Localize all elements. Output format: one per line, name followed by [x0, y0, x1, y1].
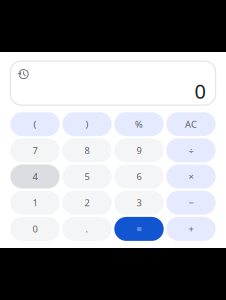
button[interactable]: 6 — [114, 164, 164, 188]
staticText: ÷ — [188, 144, 193, 156]
staticText: % — [135, 118, 143, 130]
staticText: + — [188, 223, 193, 235]
button[interactable]: − — [166, 191, 216, 215]
staticText: − — [188, 196, 193, 209]
staticText: 3 — [136, 196, 141, 209]
button[interactable]: 7 — [10, 138, 60, 162]
button[interactable]: 2 — [62, 191, 112, 215]
staticText: 4 — [32, 170, 37, 183]
button[interactable]: % — [114, 112, 164, 136]
staticText: × — [188, 170, 193, 183]
button[interactable]: History — [16, 66, 29, 82]
button[interactable]: 9 — [114, 138, 164, 162]
button[interactable]: 1 — [10, 191, 60, 215]
staticText: 1 — [32, 196, 37, 209]
staticText: 7 — [32, 144, 37, 156]
staticText: 9 — [136, 144, 141, 156]
staticText: AC — [185, 118, 197, 130]
button[interactable]: × — [166, 164, 216, 188]
staticText: = — [136, 223, 141, 235]
button[interactable]: ( — [10, 112, 60, 136]
button[interactable]: ÷ — [166, 138, 216, 162]
staticText: ( — [33, 118, 36, 130]
staticText: 0 — [194, 78, 205, 104]
button[interactable]: 4 — [10, 164, 60, 188]
staticText: . — [85, 223, 88, 235]
staticText: ) — [85, 118, 88, 130]
button[interactable]: 0 — [10, 217, 60, 241]
staticText: 6 — [136, 170, 141, 183]
button[interactable]: 3 — [114, 191, 164, 215]
button[interactable]: = — [114, 217, 164, 241]
staticText: 0 — [32, 223, 37, 235]
button[interactable]: . — [62, 217, 112, 241]
button[interactable]: 8 — [62, 138, 112, 162]
button[interactable]: AC — [166, 112, 216, 136]
staticText: 8 — [84, 144, 89, 156]
staticText: 2 — [84, 196, 89, 209]
button[interactable]: + — [166, 217, 216, 241]
staticText: 5 — [84, 170, 89, 183]
button[interactable]: 5 — [62, 164, 112, 188]
button[interactable]: ) — [62, 112, 112, 136]
